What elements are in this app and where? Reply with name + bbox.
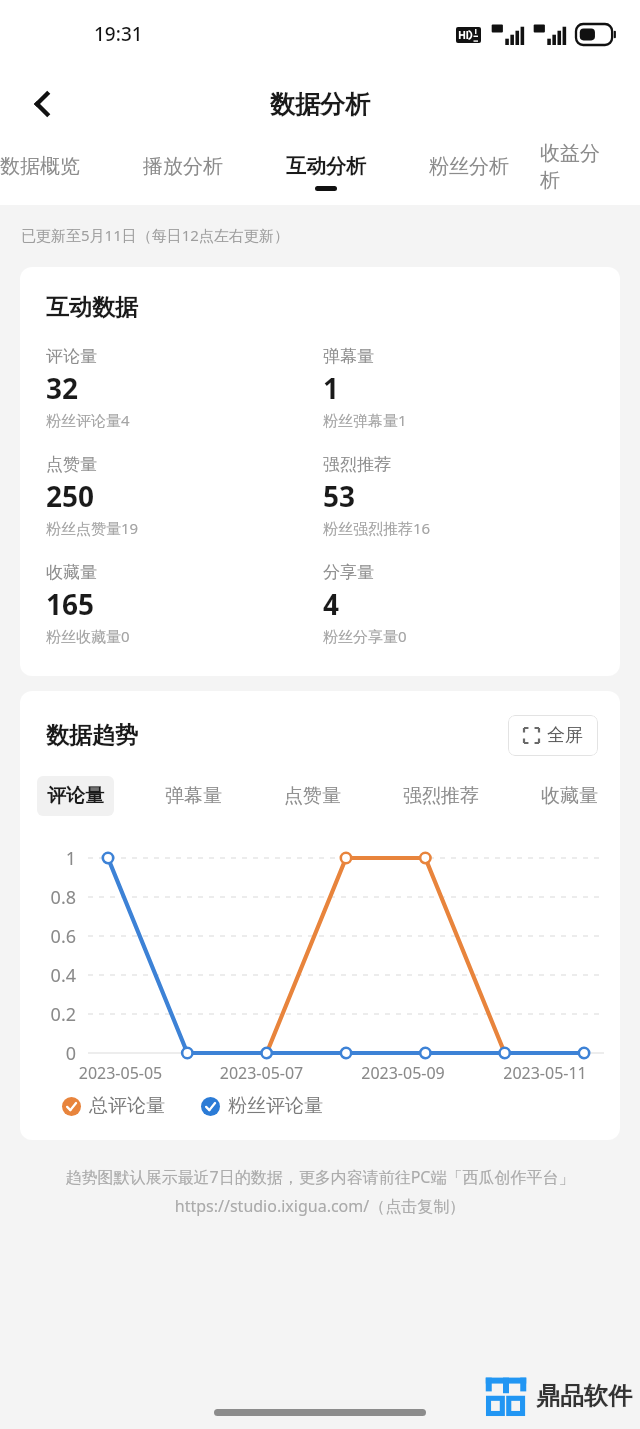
- staticText: 全屏: [547, 724, 583, 747]
- staticText: 弹幕量: [323, 346, 374, 367]
- staticText: 分享量: [323, 562, 374, 583]
- staticText: 弹幕量: [165, 784, 222, 808]
- button[interactable]: 总评论量: [62, 1094, 165, 1118]
- staticText: 粉丝点赞量19: [46, 518, 139, 538]
- staticText: 已更新至5月11日（每日12点左右更新）: [21, 225, 289, 245]
- staticText: 165: [46, 585, 95, 623]
- staticText: 数据分析: [270, 89, 370, 120]
- staticText: 0.2: [20, 1002, 76, 1027]
- staticText: 1: [20, 846, 76, 871]
- button[interactable]: 返回: [14, 75, 72, 133]
- button[interactable]: 互动分析: [254, 140, 397, 205]
- staticText: 2023-05-05: [50, 1062, 191, 1084]
- staticText: 点赞量: [284, 784, 341, 808]
- staticText: 1: [323, 369, 340, 407]
- staticText: 评论量: [46, 346, 97, 367]
- button[interactable]: 全屏: [508, 715, 598, 756]
- staticText: 评论量: [47, 784, 104, 808]
- staticText: 2023-05-11: [474, 1062, 616, 1084]
- staticText: 粉丝收藏量0: [46, 626, 130, 646]
- button[interactable]: 收益分析: [540, 140, 608, 205]
- button[interactable]: 粉丝分析: [397, 140, 540, 205]
- button[interactable]: 数据概览: [0, 140, 111, 205]
- staticText: 0: [20, 1041, 76, 1066]
- button[interactable]: 收藏量: [531, 776, 608, 816]
- staticText: 播放分析: [143, 154, 223, 179]
- staticText: 粉丝弹幕量1: [323, 410, 407, 430]
- staticText: 总评论量: [89, 1094, 165, 1118]
- staticText: 2023-05-07: [191, 1062, 332, 1084]
- button[interactable]: 点赞量: [274, 776, 351, 816]
- staticText: 收藏量: [46, 562, 97, 583]
- staticText: 0.8: [20, 885, 76, 910]
- staticText: 粉丝分享量0: [323, 626, 407, 646]
- staticText: 鼎品软件: [536, 1381, 632, 1411]
- staticText: 趋势图默认展示最近7日的数据，更多内容请前往PC端「西瓜创作平台」: [0, 1166, 640, 1188]
- button[interactable]: 评论量: [37, 776, 114, 816]
- staticText: 250: [46, 477, 95, 515]
- staticText: 点赞量: [46, 454, 97, 475]
- staticText: 0.4: [20, 963, 76, 988]
- staticText: 收藏量: [541, 784, 598, 808]
- staticText: 数据概览: [0, 154, 80, 179]
- button[interactable]: 粉丝评论量: [201, 1094, 323, 1118]
- staticText: 32: [46, 369, 79, 407]
- staticText: 强烈推荐: [403, 784, 479, 808]
- staticText: 强烈推荐: [323, 454, 391, 475]
- staticText: 数据趋势: [46, 721, 138, 750]
- button[interactable]: 弹幕量: [155, 776, 232, 816]
- staticText: 粉丝评论量: [228, 1094, 323, 1118]
- button[interactable]: 强烈推荐: [393, 776, 489, 816]
- staticText: 互动数据: [46, 293, 138, 322]
- button[interactable]: 播放分析: [111, 140, 254, 205]
- staticText: 互动分析: [286, 154, 366, 179]
- staticText: 2023-05-09: [332, 1062, 474, 1084]
- staticText: 粉丝强烈推荐16: [323, 518, 431, 538]
- staticText: 收益分析: [540, 141, 608, 193]
- staticText: 4: [323, 585, 340, 623]
- staticText: 19:31: [94, 21, 143, 47]
- staticText: 53: [323, 477, 356, 515]
- staticText: 0.6: [20, 924, 76, 949]
- staticText: 粉丝分析: [429, 154, 509, 179]
- staticText: https://studio.ixigua.com/（点击复制）: [0, 1195, 640, 1217]
- staticText: 粉丝评论量4: [46, 410, 130, 430]
